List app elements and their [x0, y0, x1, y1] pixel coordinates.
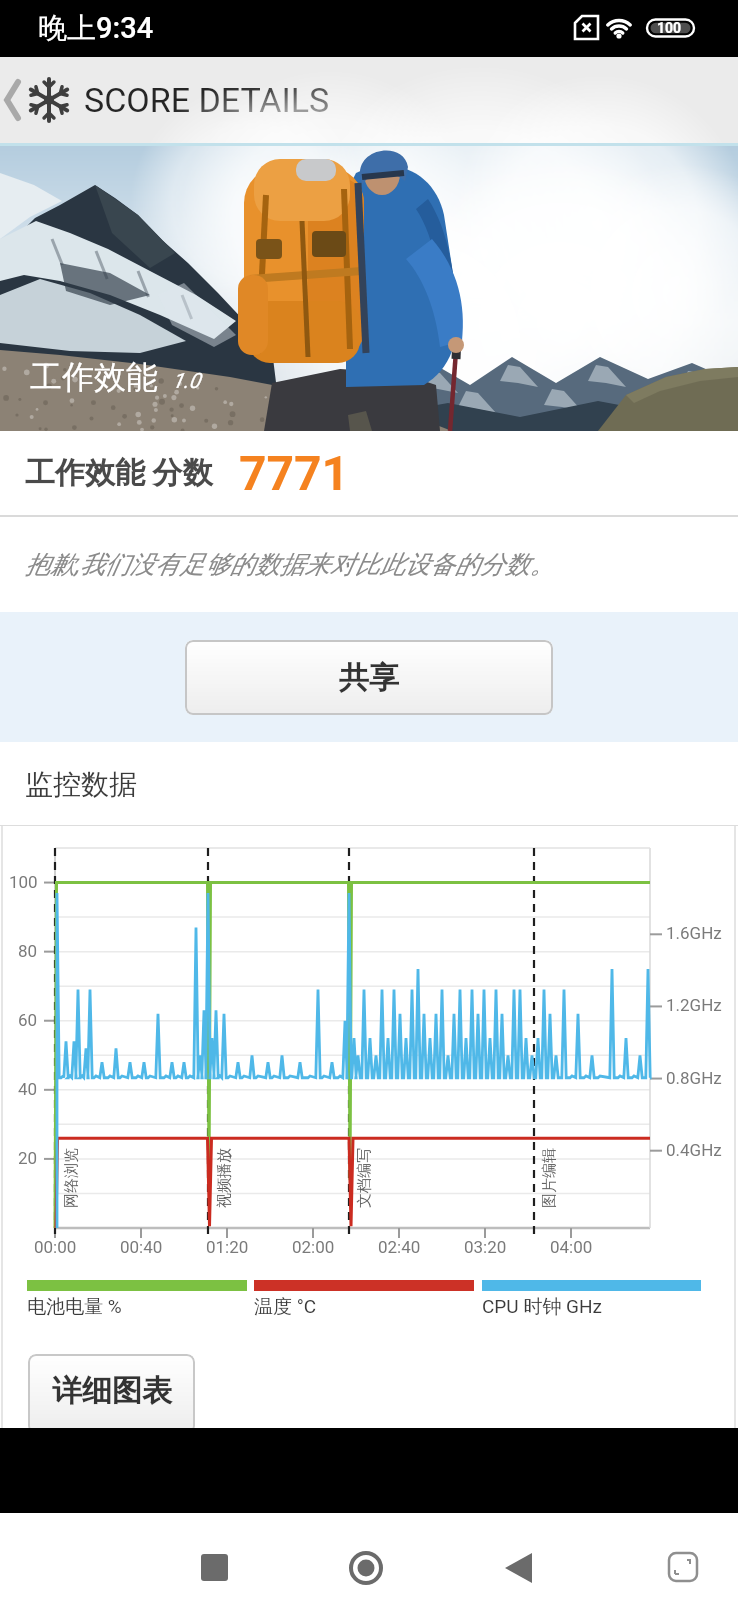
- staticText: 02:00: [292, 1237, 335, 1257]
- staticText: 共享: [339, 659, 399, 697]
- staticText: 详细图表: [52, 1372, 172, 1410]
- button[interactable]: 共享: [185, 640, 553, 715]
- staticText: CPU 时钟 GHz: [482, 1295, 603, 1319]
- staticText: 60: [18, 1010, 38, 1030]
- staticText: 工作效能: [30, 357, 158, 397]
- staticText: 图片编辑: [540, 1148, 559, 1208]
- staticText: 00:40: [120, 1237, 163, 1257]
- staticText: 7771: [239, 445, 350, 501]
- staticText: 03:20: [464, 1237, 507, 1257]
- staticText: 40: [18, 1079, 38, 1099]
- button[interactable]: [340, 1541, 392, 1593]
- staticText: 0.8GHz: [666, 1068, 722, 1088]
- staticText: 80: [18, 941, 38, 961]
- staticText: 监控数据: [25, 767, 137, 802]
- staticText: 文档编写: [355, 1148, 374, 1208]
- button[interactable]: [492, 1541, 544, 1593]
- staticText: SCORE DETAILS: [84, 80, 330, 120]
- staticText: 02:40: [378, 1237, 421, 1257]
- staticText: 工作效能 分数: [25, 454, 213, 492]
- staticText: 电池电量 %: [27, 1295, 122, 1319]
- staticText: 温度 °C: [254, 1295, 317, 1319]
- staticText: 100: [657, 20, 682, 36]
- staticText: 晚上9:34: [38, 10, 154, 47]
- button[interactable]: [657, 1541, 709, 1593]
- button[interactable]: 详细图表: [28, 1354, 195, 1434]
- button[interactable]: [188, 1541, 240, 1593]
- staticText: 网络浏览: [62, 1148, 81, 1208]
- staticText: 1.0: [172, 369, 201, 394]
- staticText: 100: [9, 872, 38, 892]
- staticText: 04:00: [550, 1237, 593, 1257]
- staticText: 视频播放: [215, 1148, 234, 1208]
- staticText: 20: [18, 1148, 38, 1168]
- staticText: 抱歉,我们没有足够的数据来对比此设备的分数。: [25, 549, 555, 580]
- staticText: 0.4GHz: [666, 1140, 722, 1160]
- staticText: 01:20: [206, 1237, 249, 1257]
- staticText: 00:00: [34, 1237, 77, 1257]
- staticText: 1.2GHz: [666, 995, 722, 1015]
- staticText: 1.6GHz: [666, 923, 722, 943]
- button[interactable]: [0, 57, 26, 143]
